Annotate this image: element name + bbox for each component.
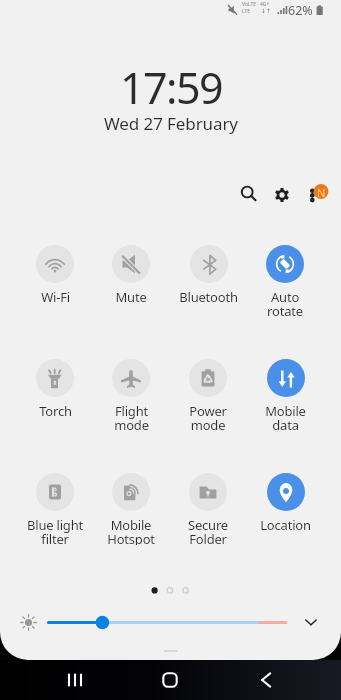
button[interactable]: Brightness [14, 608, 42, 636]
button[interactable]: Secure Folder [170, 473, 246, 545]
button[interactable]: Search [233, 178, 265, 210]
staticText: Wed 27 February [104, 112, 238, 135]
staticText: Secure Folder [188, 516, 228, 545]
button[interactable]: Mobile Hotspot [93, 473, 169, 545]
staticText: Torch [39, 402, 72, 420]
staticText: Mobile Hotspot [107, 516, 155, 545]
button[interactable]: Expand [297, 608, 325, 636]
button[interactable]: Recents [55, 660, 95, 700]
staticText: Blue light filter [27, 516, 83, 545]
staticText: Flight mode [114, 402, 149, 431]
button[interactable]: Location [247, 473, 323, 545]
staticText: LTE [242, 8, 251, 15]
button[interactable]: Mute [93, 245, 169, 317]
button[interactable]: Settings [266, 179, 298, 211]
staticText: Location [260, 516, 311, 534]
button[interactable]: Bluetooth [170, 245, 246, 317]
staticText: Power mode [189, 402, 227, 431]
button[interactable]: Flight mode [93, 359, 169, 431]
button[interactable]: Mobile data [247, 359, 323, 431]
button[interactable]: Brightness slider [42, 608, 294, 636]
staticText: Mute [115, 288, 147, 306]
button[interactable]: Power mode [170, 359, 246, 431]
button[interactable]: Auto rotate [247, 245, 323, 317]
button[interactable]: Home [150, 660, 190, 700]
staticText: Mobile data [265, 402, 306, 431]
staticText: ↓↑ [261, 7, 272, 14]
button[interactable]: Blue light filter [17, 473, 93, 545]
staticText: 4G+ [260, 1, 270, 8]
button[interactable]: Back [246, 660, 286, 700]
button[interactable]: Torch [17, 359, 93, 431]
button[interactable]: Wi-Fi [17, 245, 93, 317]
staticText: 17:59 [120, 58, 222, 117]
staticText: VoLTE [242, 1, 257, 8]
staticText: Auto rotate [267, 288, 303, 317]
staticText: Wi-Fi [41, 288, 70, 306]
staticText: 62% [288, 2, 313, 19]
button[interactable]: More options [302, 176, 334, 208]
staticText: N [317, 185, 326, 200]
staticText: Bluetooth [179, 288, 238, 306]
